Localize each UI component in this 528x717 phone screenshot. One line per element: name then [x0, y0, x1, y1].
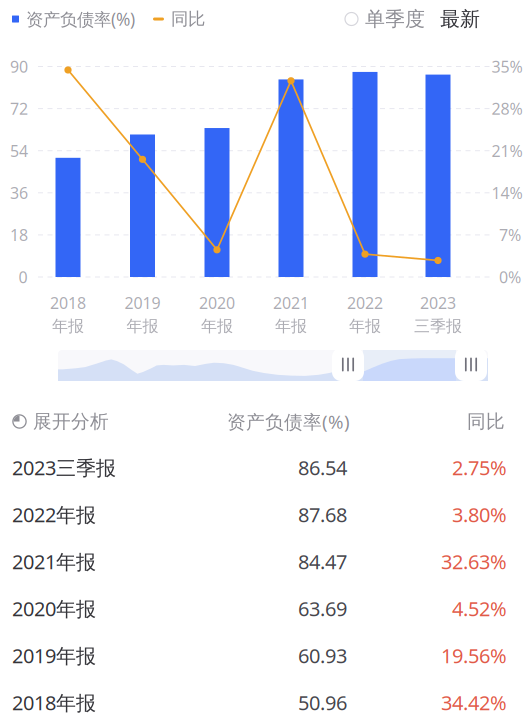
- staticText: 2018年报: [12, 689, 96, 716]
- staticText: 3.80%: [452, 501, 507, 528]
- staticText: 2023: [420, 292, 456, 313]
- staticText: 同比: [467, 410, 505, 433]
- staticText: 4.52%: [452, 595, 507, 622]
- staticText: 2020: [199, 292, 235, 313]
- staticText: 86.54: [298, 454, 347, 481]
- button[interactable]: 单季度: [345, 7, 425, 31]
- staticText: 18: [10, 224, 28, 245]
- staticText: 2.75%: [452, 454, 507, 481]
- staticText: 7%: [499, 224, 521, 245]
- button[interactable]: Range end: [455, 348, 487, 381]
- staticText: 28%: [491, 98, 522, 119]
- staticText: 90: [10, 56, 28, 77]
- button[interactable]: Range start: [332, 348, 364, 381]
- staticText: 60.93: [298, 642, 347, 669]
- staticText: 2022年报: [12, 501, 96, 528]
- staticText: 32.63%: [441, 548, 507, 575]
- staticText: 63.69: [298, 595, 347, 622]
- staticText: 0: [18, 266, 27, 288]
- staticText: 87.68: [298, 501, 347, 528]
- staticText: 84.47: [298, 548, 347, 575]
- button[interactable]: 2023三季报: [0, 444, 528, 491]
- staticText: 36: [10, 182, 28, 203]
- staticText: 三季报: [414, 316, 462, 336]
- staticText: 50.96: [298, 689, 347, 716]
- staticText: 2021年报: [12, 548, 96, 575]
- staticText: 2021: [273, 292, 309, 313]
- button[interactable]: 2021年报: [0, 538, 528, 585]
- staticText: 年报: [201, 316, 233, 336]
- staticText: 72: [10, 98, 28, 119]
- staticText: 最新: [440, 7, 480, 31]
- staticText: 年报: [349, 316, 381, 336]
- staticText: 21%: [491, 140, 522, 161]
- staticText: 2019年报: [12, 642, 96, 669]
- staticText: 19.56%: [441, 642, 507, 669]
- staticText: 2020年报: [12, 595, 96, 622]
- button[interactable]: 2018年报: [0, 679, 528, 717]
- staticText: 年报: [52, 316, 84, 336]
- staticText: 34.42%: [441, 689, 507, 716]
- staticText: 0%: [499, 266, 521, 288]
- button[interactable]: 展开分析: [0, 410, 109, 433]
- button[interactable]: 2020年报: [0, 585, 528, 632]
- staticText: 2018: [50, 292, 86, 313]
- staticText: 54: [10, 140, 28, 161]
- staticText: 35%: [491, 56, 522, 77]
- staticText: 资产负债率(%): [26, 7, 135, 30]
- staticText: 2023三季报: [12, 454, 116, 481]
- staticText: 年报: [275, 316, 307, 336]
- staticText: 同比: [171, 8, 205, 30]
- staticText: 单季度: [365, 7, 425, 31]
- staticText: 2022: [347, 292, 383, 313]
- button[interactable]: 2022年报: [0, 491, 528, 538]
- staticText: 2019: [124, 292, 160, 313]
- staticText: 资产负债率(%): [227, 409, 350, 434]
- button[interactable]: 最新: [440, 7, 480, 31]
- button[interactable]: 2019年报: [0, 632, 528, 679]
- staticText: 年报: [126, 316, 158, 336]
- staticText: 14%: [491, 182, 522, 203]
- staticText: 展开分析: [33, 410, 109, 433]
